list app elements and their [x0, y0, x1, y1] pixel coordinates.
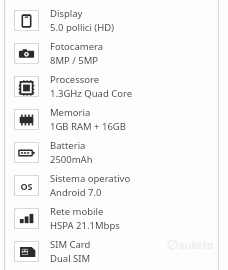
other: SIM Card — [14, 241, 39, 262]
button[interactable]: Display — [5, 4, 218, 37]
staticText: subito — [179, 237, 214, 252]
staticText: 2500mAh — [50, 153, 93, 166]
staticText: Batteria — [50, 139, 86, 152]
other: Processore — [14, 76, 39, 97]
other: Fotocamera — [14, 43, 39, 64]
staticText: HSPA 21.1Mbps — [50, 219, 120, 232]
staticText: Dual SIM — [50, 252, 91, 265]
staticText: 1.3GHz Quad Core — [50, 87, 133, 100]
button[interactable]: Sistema operativo — [5, 169, 218, 202]
button[interactable]: Memoria — [5, 103, 218, 136]
button[interactable]: Fotocamera — [5, 37, 218, 70]
button[interactable]: Rete mobile — [5, 202, 218, 235]
other: Rete mobile — [14, 208, 39, 229]
other: Sistema operativo — [14, 175, 39, 196]
staticText: Android 7.0 — [50, 186, 102, 199]
staticText: Fotocamera — [50, 40, 104, 53]
staticText: Memoria — [50, 106, 91, 119]
staticText: Display — [50, 7, 83, 20]
staticText: Rete mobile — [50, 205, 104, 218]
other: Display — [14, 10, 39, 31]
other: Memoria — [14, 109, 39, 130]
staticText: Sistema operativo — [50, 172, 131, 185]
staticText: 5.0 pollici (HD) — [50, 21, 114, 34]
button[interactable]: Batteria — [5, 136, 218, 169]
staticText: SIM Card — [50, 238, 91, 251]
button[interactable]: SIM Card — [5, 235, 218, 268]
staticText: Processore — [50, 73, 100, 86]
staticText: 1GB RAM + 16GB — [50, 120, 126, 133]
staticText: OS — [20, 180, 33, 192]
staticText: 8MP / 5MP — [50, 54, 99, 67]
button[interactable]: Processore — [5, 70, 218, 103]
other: Batteria — [14, 142, 39, 163]
